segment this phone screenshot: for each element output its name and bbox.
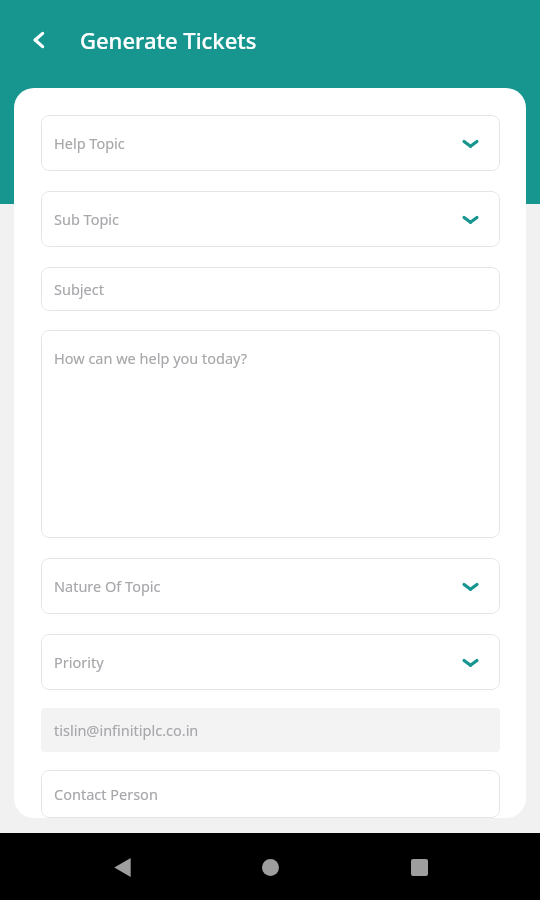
button[interactable]: Priority [41, 634, 500, 690]
button[interactable]: Help Topic [41, 115, 500, 171]
button[interactable]: tislin@infinitiplc.co.in [41, 708, 500, 752]
button[interactable]: Back [18, 18, 62, 62]
staticText: How can we help you today? [54, 348, 248, 368]
button[interactable]: Home [243, 840, 297, 894]
staticText: Contact Person [54, 784, 158, 804]
staticText: Nature Of Topic [54, 576, 161, 596]
button[interactable]: Back [95, 840, 149, 894]
staticText: Help Topic [54, 133, 125, 153]
staticText: tislin@infinitiplc.co.in [54, 720, 199, 740]
staticText: Generate Tickets [80, 25, 257, 55]
button[interactable]: Subject [41, 267, 500, 311]
button[interactable]: Recent apps [392, 840, 446, 894]
staticText: Sub Topic [54, 209, 120, 229]
staticText: Priority [54, 652, 104, 672]
button[interactable]: Sub Topic [41, 191, 500, 247]
button[interactable]: How can we help you today? [41, 330, 500, 538]
button[interactable]: Contact Person [41, 770, 500, 818]
staticText: Subject [54, 279, 104, 299]
button[interactable]: Nature Of Topic [41, 558, 500, 614]
